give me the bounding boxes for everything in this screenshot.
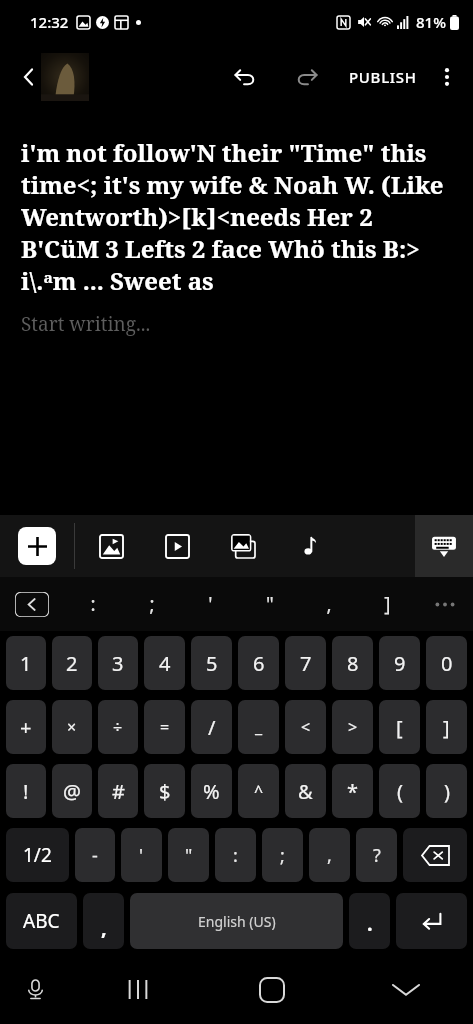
button[interactable]: Insert gallery: [223, 526, 263, 566]
staticText: ,: [326, 591, 332, 617]
staticText: 1/2: [23, 842, 52, 868]
staticText: 7: [300, 650, 312, 677]
button[interactable]: @: [52, 764, 92, 818]
button[interactable]: %: [191, 764, 232, 818]
button[interactable]: ;: [262, 828, 303, 882]
button[interactable]: Back: [8, 56, 50, 98]
staticText: #: [112, 778, 125, 805]
button[interactable]: 2: [52, 636, 92, 690]
button[interactable]: Start writing...: [21, 311, 452, 337]
staticText: @: [63, 778, 81, 805]
button[interactable]: ^: [238, 764, 279, 818]
staticText: 9: [394, 650, 406, 677]
staticText: .: [367, 910, 373, 937]
button[interactable]: More symbols: [417, 577, 473, 631]
button[interactable]: Redo: [283, 53, 331, 101]
staticText: 81%: [416, 12, 446, 32]
button[interactable]: Backspace: [403, 828, 467, 882]
button[interactable]: English (US): [130, 893, 343, 949]
button[interactable]: 7: [285, 636, 326, 690]
button[interactable]: Recent apps: [70, 955, 205, 1024]
button[interactable]: ÷: [98, 700, 138, 754]
button[interactable]: *: [332, 764, 373, 818]
button[interactable]: 3: [98, 636, 138, 690]
button[interactable]: <: [285, 700, 326, 754]
staticText: =: [160, 716, 170, 738]
button[interactable]: Hide keyboard: [415, 515, 473, 577]
button[interactable]: +: [6, 700, 46, 754]
button[interactable]: [: [379, 700, 420, 754]
button[interactable]: More options: [425, 55, 469, 99]
staticText: $: [159, 778, 171, 805]
staticText: !: [23, 778, 29, 805]
staticText: ]: [384, 591, 391, 617]
button[interactable]: PUBLISH: [341, 57, 425, 97]
button[interactable]: ,: [309, 828, 350, 882]
button[interactable]: !: [6, 764, 46, 818]
button[interactable]: &: [285, 764, 326, 818]
staticText: 4: [159, 650, 171, 677]
button[interactable]: ): [426, 764, 467, 818]
button[interactable]: /: [191, 700, 232, 754]
staticText: ': [139, 843, 144, 868]
button[interactable]: ': [181, 577, 240, 631]
button[interactable]: 9: [379, 636, 420, 690]
staticText: ): [444, 778, 450, 805]
staticText: 2: [66, 650, 78, 677]
button[interactable]: ]: [358, 577, 417, 631]
staticText: ABC: [23, 908, 60, 934]
button[interactable]: ": [168, 828, 209, 882]
button[interactable]: Expand toolbar: [0, 577, 64, 631]
button[interactable]: 0: [426, 636, 467, 690]
button[interactable]: >: [332, 700, 373, 754]
button[interactable]: ,: [299, 577, 358, 631]
button[interactable]: Post image: [41, 53, 89, 101]
button[interactable]: 1: [6, 636, 46, 690]
button[interactable]: _: [238, 700, 279, 754]
button[interactable]: ABC: [6, 893, 77, 949]
button[interactable]: Insert video: [157, 526, 197, 566]
button[interactable]: .: [349, 893, 390, 949]
button[interactable]: Enter: [396, 893, 467, 949]
button[interactable]: ": [240, 577, 299, 631]
button[interactable]: ;: [122, 577, 181, 631]
button[interactable]: :: [64, 577, 122, 631]
button[interactable]: 4: [144, 636, 185, 690]
staticText: 8: [347, 650, 359, 677]
staticText: >: [348, 716, 358, 738]
button[interactable]: Undo: [221, 53, 269, 101]
staticText: 12:32: [30, 12, 69, 32]
button[interactable]: #: [98, 764, 138, 818]
staticText: ': [208, 591, 213, 617]
button[interactable]: ': [121, 828, 162, 882]
staticText: 5: [206, 650, 218, 677]
button[interactable]: :: [215, 828, 256, 882]
button[interactable]: ?: [356, 828, 397, 882]
button[interactable]: -: [75, 828, 115, 882]
staticText: &: [298, 778, 313, 805]
button[interactable]: Insert audio: [289, 526, 329, 566]
button[interactable]: 8: [332, 636, 373, 690]
staticText: ;: [149, 591, 155, 617]
button[interactable]: 1/2: [6, 828, 69, 882]
button[interactable]: Hide keyboard: [339, 955, 473, 1024]
button[interactable]: Add block: [18, 527, 56, 565]
button[interactable]: (: [379, 764, 420, 818]
button[interactable]: =: [144, 700, 185, 754]
button[interactable]: ]: [426, 700, 467, 754]
button[interactable]: ,: [83, 893, 124, 949]
staticText: ": [266, 591, 274, 617]
staticText: +: [20, 714, 32, 741]
button[interactable]: ×: [52, 700, 92, 754]
staticText: ,: [327, 843, 332, 868]
button[interactable]: 6: [238, 636, 279, 690]
button[interactable]: i'm not follow'N their "Time" this time<…: [21, 136, 452, 297]
button[interactable]: $: [144, 764, 185, 818]
staticText: English (US): [198, 912, 276, 931]
button[interactable]: 5: [191, 636, 232, 690]
staticText: ": [185, 843, 193, 868]
button[interactable]: Home: [205, 955, 339, 1024]
button[interactable]: Voice input: [0, 955, 70, 1024]
button[interactable]: Insert image: [91, 526, 131, 566]
staticText: <: [301, 716, 311, 738]
